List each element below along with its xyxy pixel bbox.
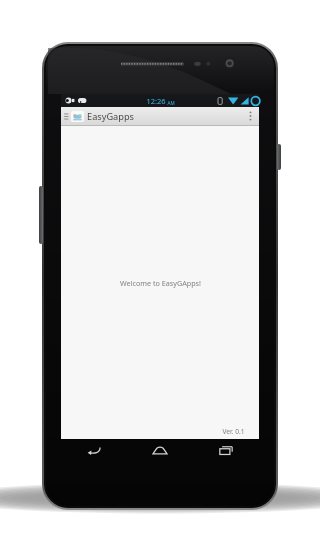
staticText: 12:26	[146, 96, 166, 106]
staticText: AM	[167, 100, 175, 106]
other: Navigate up	[63, 112, 69, 121]
button[interactable]: More options	[244, 107, 257, 125]
staticText: Welcome to EasyGApps!	[120, 278, 201, 288]
button[interactable]: Home	[127, 439, 193, 461]
staticText: Ver. 0.1	[222, 427, 245, 436]
staticText: EasyGapps	[87, 110, 134, 123]
button[interactable]: Back	[61, 439, 127, 461]
button[interactable]: Navigate up	[63, 107, 199, 125]
button[interactable]: Recent apps	[193, 439, 259, 461]
